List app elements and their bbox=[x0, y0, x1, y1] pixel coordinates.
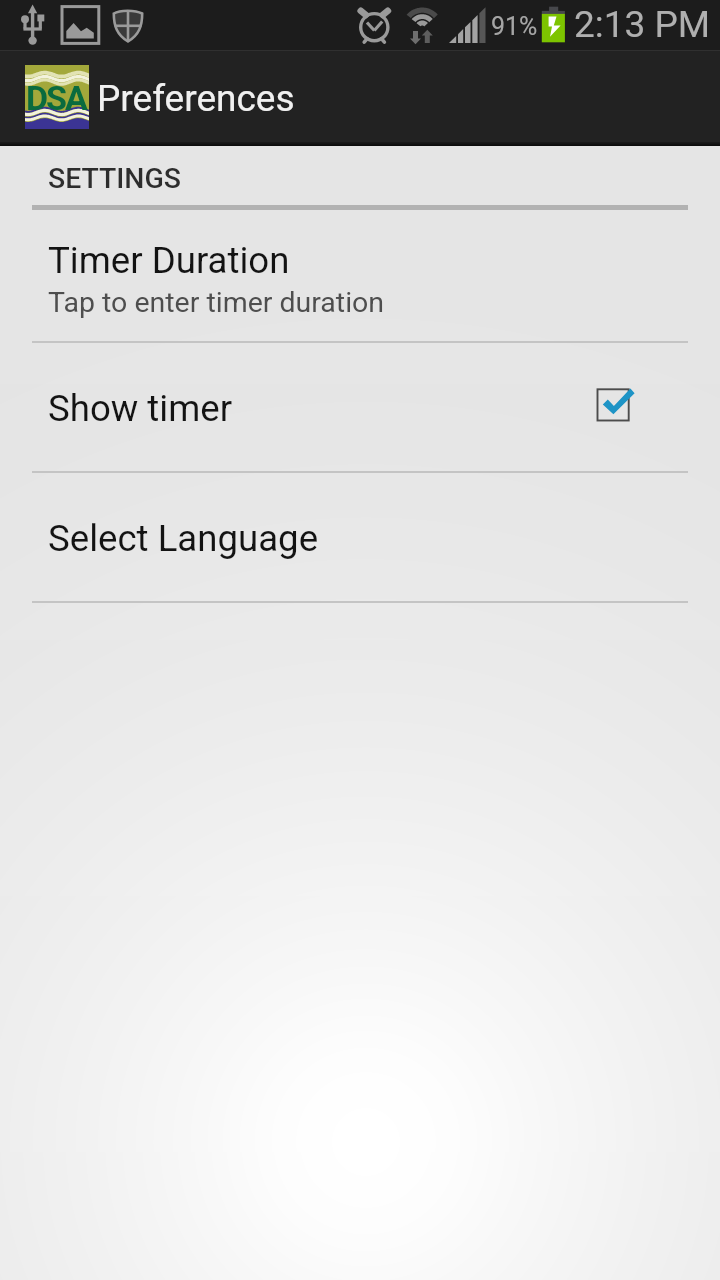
staticText: DSA bbox=[26, 78, 86, 118]
button[interactable]: Show timer bbox=[0, 341, 720, 471]
button[interactable]: Select Language bbox=[0, 471, 720, 601]
staticText: SETTINGS bbox=[48, 162, 182, 195]
other: Show timer checkbox bbox=[594, 378, 640, 424]
button[interactable]: Timer Duration bbox=[0, 210, 720, 341]
staticText: Preferences bbox=[97, 77, 295, 120]
staticText: Tap to enter timer duration bbox=[48, 286, 385, 319]
staticText: 91% bbox=[491, 12, 538, 41]
staticText: 2:13 PM bbox=[574, 3, 711, 46]
staticText: Show timer bbox=[48, 387, 233, 430]
staticText: Select Language bbox=[48, 517, 319, 560]
staticText: Timer Duration bbox=[48, 239, 290, 282]
